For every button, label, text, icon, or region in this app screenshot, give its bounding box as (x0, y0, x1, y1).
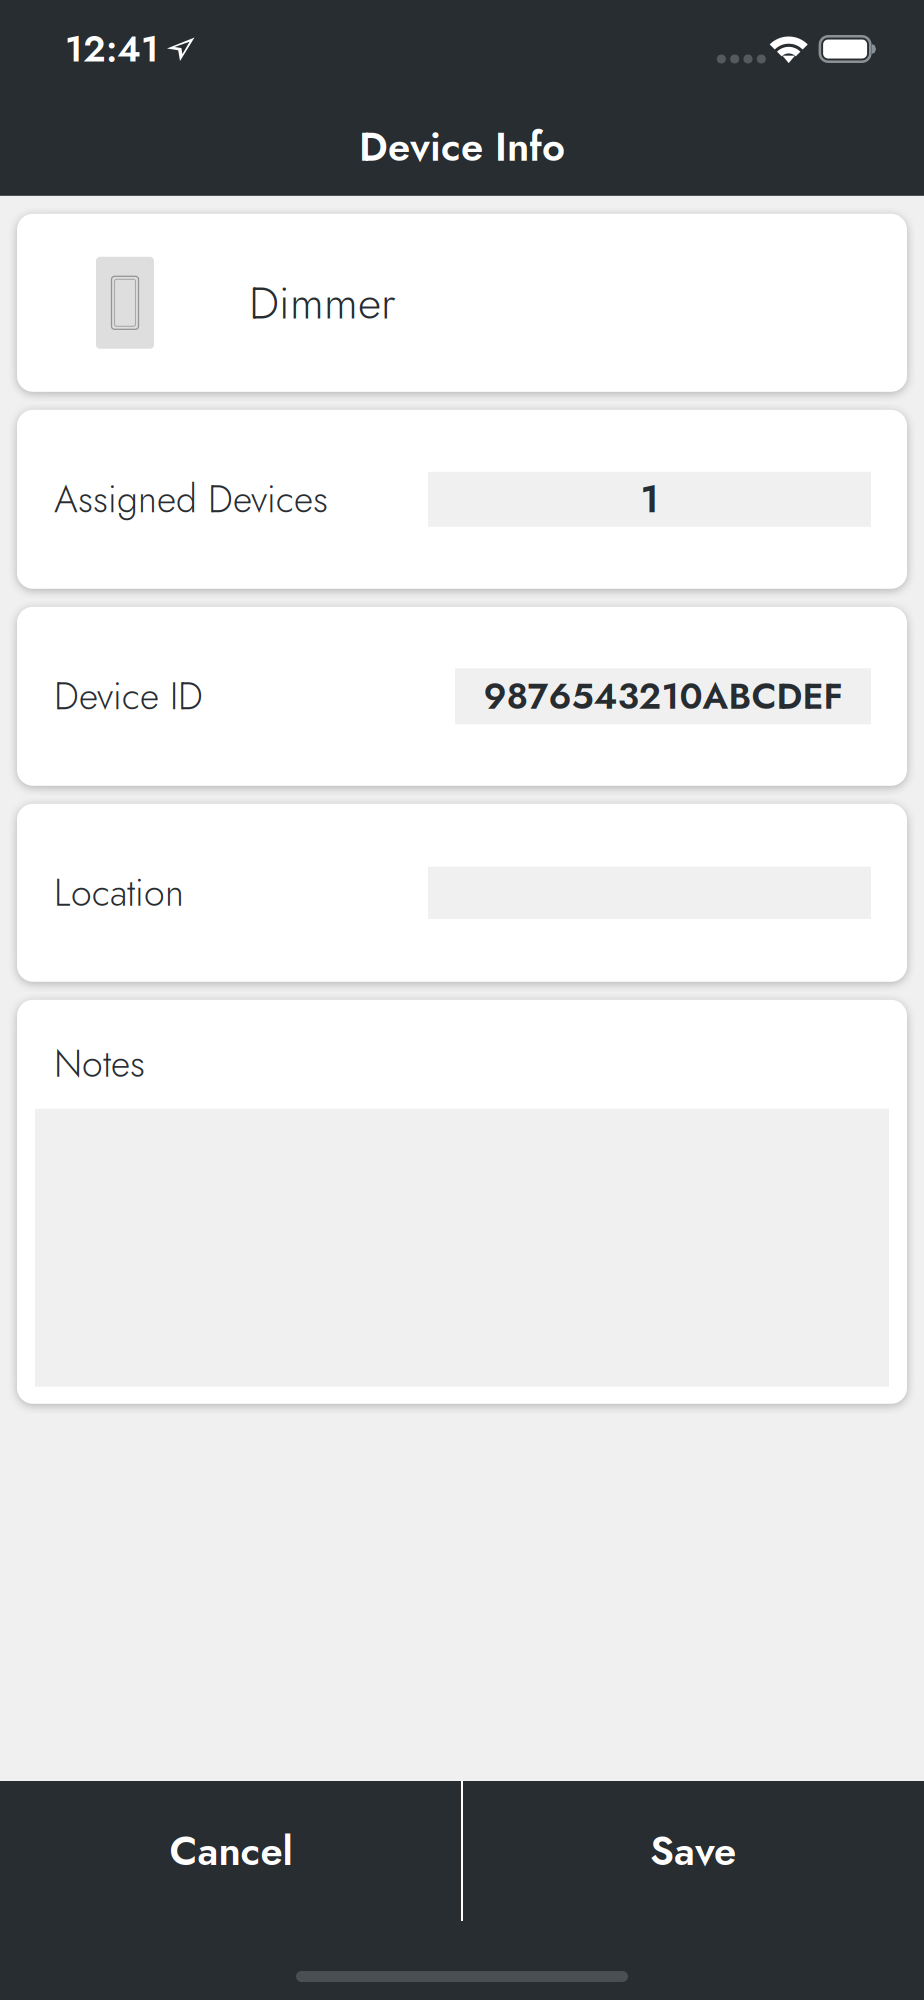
staticText: Location (54, 866, 184, 920)
staticText: Device ID (54, 669, 203, 723)
staticText: Notes (54, 1037, 145, 1091)
staticText: Save (650, 1822, 736, 1880)
button[interactable]: Cancel (0, 1781, 462, 1921)
staticText: Assigned Devices (54, 472, 328, 526)
staticText: 12:41 (65, 23, 159, 75)
staticText: Device Info (359, 118, 565, 176)
button[interactable]: Save (462, 1781, 924, 1921)
staticText: Dimmer (249, 270, 396, 335)
staticText: Cancel (169, 1822, 292, 1880)
staticText: 1 (640, 472, 658, 526)
staticText: 9876543210ABCDEF (483, 670, 842, 722)
